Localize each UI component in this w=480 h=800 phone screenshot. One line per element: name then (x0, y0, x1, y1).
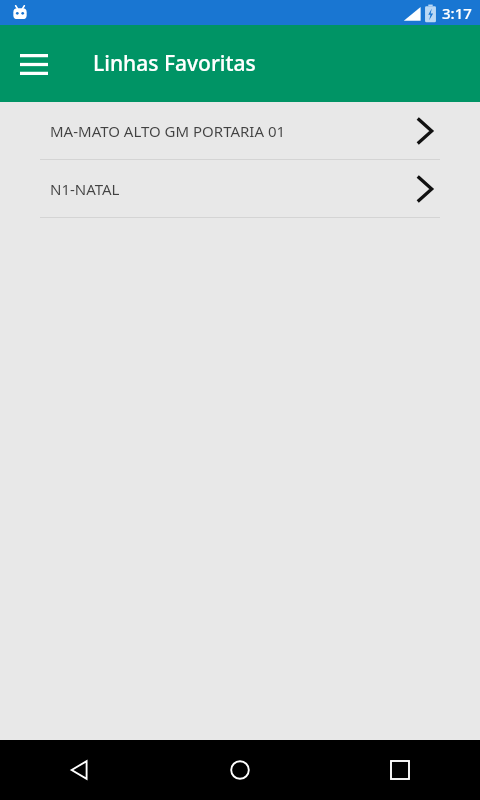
staticText: MA-MATO ALTO GM PORTARIA 01 (50, 121, 286, 141)
button[interactable]: Recent apps (320, 740, 480, 800)
button[interactable]: Open navigation menu (8, 38, 60, 90)
button[interactable]: MA-MATO ALTO GM PORTARIA 01 (0, 102, 480, 160)
button[interactable]: Home (160, 740, 320, 800)
button[interactable]: Back (0, 740, 160, 800)
staticText: 3:17 (442, 3, 472, 23)
button[interactable]: N1-NATAL (0, 160, 480, 218)
staticText: N1-NATAL (50, 179, 120, 199)
staticText: Linhas Favoritas (93, 49, 256, 78)
